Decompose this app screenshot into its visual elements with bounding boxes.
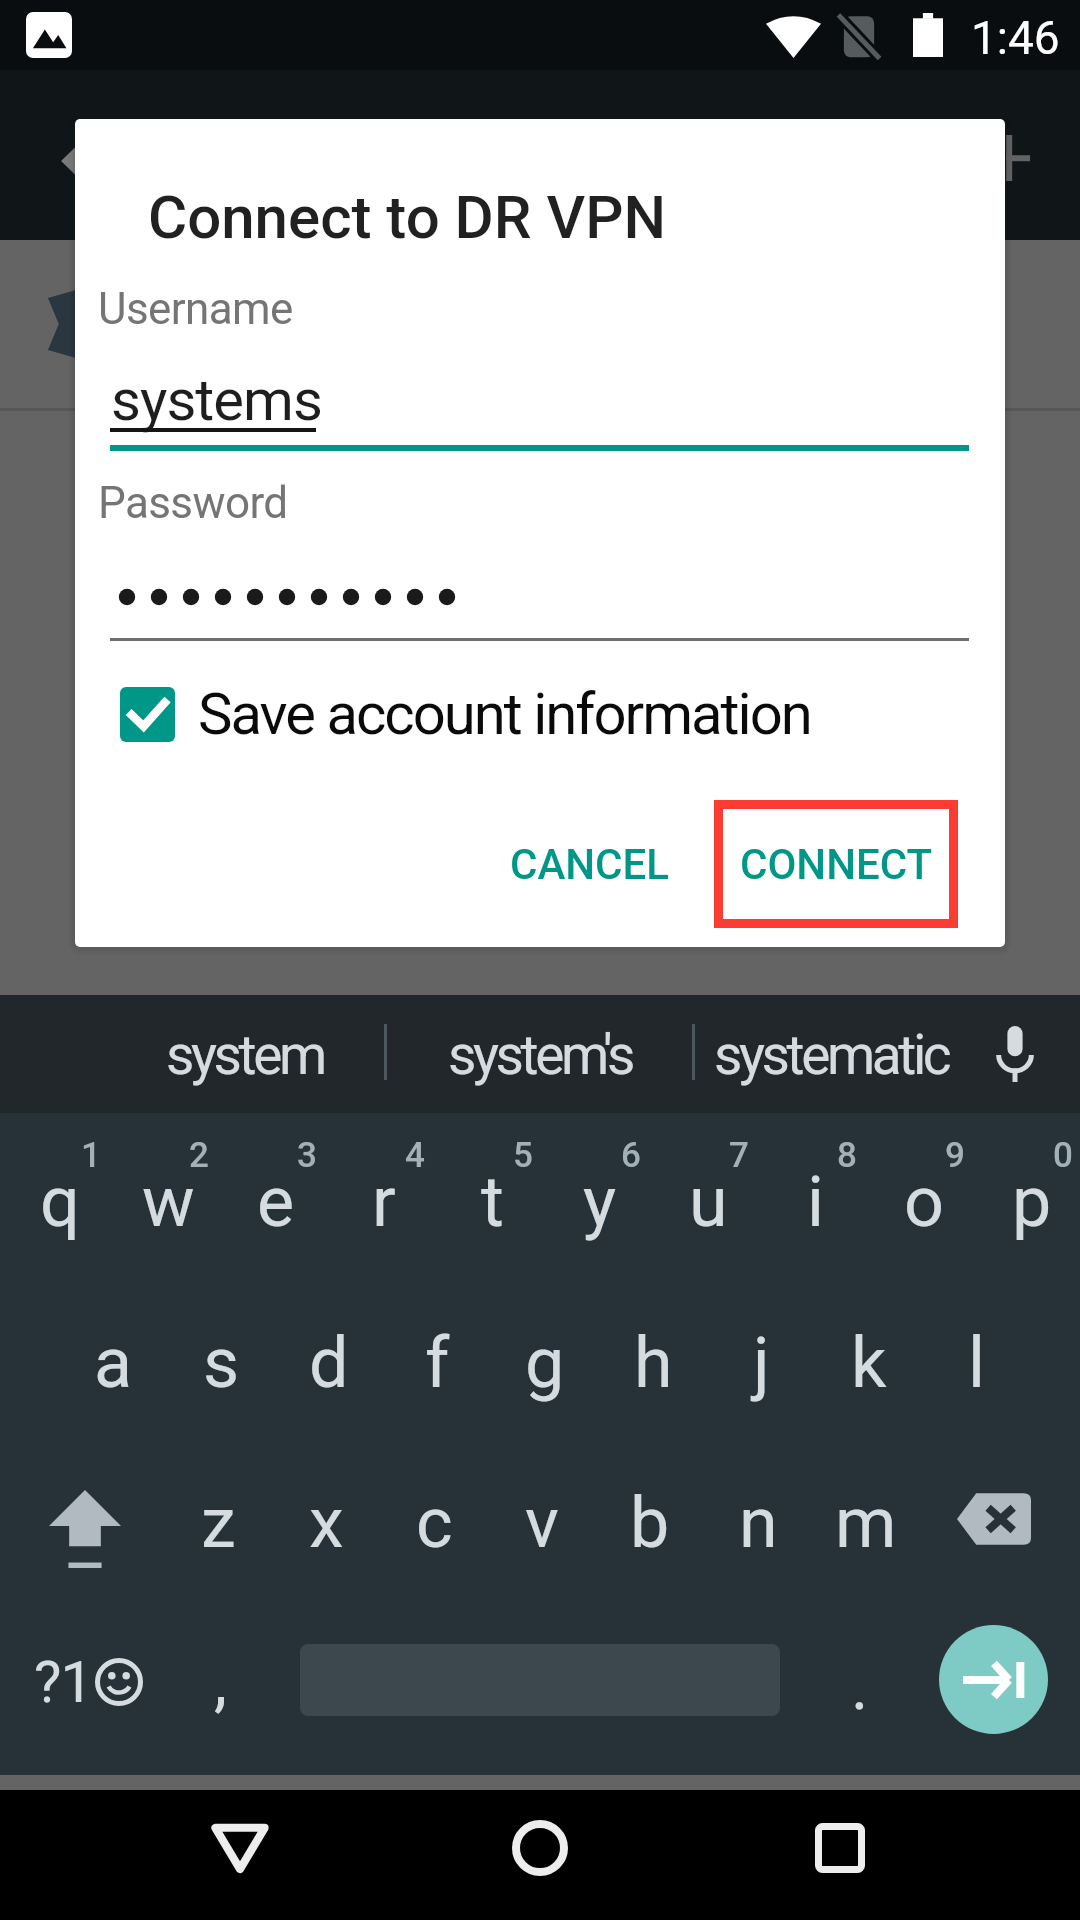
button[interactable]: Navigate up [20,110,130,220]
staticText: 2 [189,1135,209,1176]
button[interactable]: 0 [978,1113,1080,1273]
staticText: x [309,1482,344,1564]
button[interactable]: 1 [6,1113,114,1273]
staticText: a [94,1322,133,1404]
button[interactable]: Back [180,1790,300,1920]
button[interactable]: n [704,1433,812,1593]
staticText: v [525,1482,559,1564]
button[interactable]: 8 [762,1113,870,1273]
button[interactable]: f [383,1273,491,1433]
staticText: 7 [729,1135,749,1176]
staticText: Password [98,477,288,529]
staticText: system's [448,1023,633,1087]
button[interactable]: CONNECT [714,800,958,928]
button[interactable]: g [491,1273,599,1433]
staticText: n [739,1482,778,1564]
staticText: l [968,1322,986,1404]
button[interactable]: systematic [702,995,960,1113]
button[interactable]: system's [388,995,693,1113]
button[interactable]: Save account information [120,674,811,754]
button[interactable]: l [923,1273,1031,1433]
button[interactable]: Backspace [920,1433,1080,1593]
button[interactable]: 6 [546,1113,654,1273]
staticText: b [630,1482,670,1564]
button[interactable]: , [168,1593,280,1775]
staticText: w [142,1161,195,1243]
staticText: systematic [714,1023,949,1087]
staticText: y [583,1161,617,1243]
staticText: z [201,1482,236,1564]
staticText: p [1012,1161,1052,1243]
button[interactable]: b [596,1433,704,1593]
staticText: 8 [837,1135,857,1176]
button[interactable]: CANCEL [455,813,723,915]
staticText: 5 [513,1135,533,1176]
staticText: 9 [945,1135,965,1176]
staticText: 4 [405,1135,425,1176]
staticText: ?1 [34,1648,93,1716]
staticText: Connect to DR VPN [148,182,667,252]
button[interactable]: x [272,1433,380,1593]
staticText: 6 [621,1135,641,1176]
button[interactable]: 3 [222,1113,330,1273]
button[interactable]: 5 [438,1113,546,1273]
button[interactable]: k [815,1273,923,1433]
staticText: CANCEL [510,840,669,889]
staticText: k [851,1322,887,1404]
staticText: o [904,1161,944,1243]
button[interactable]: . [800,1593,918,1775]
staticText: s [203,1322,240,1404]
button[interactable]: Symbols and emoji [0,1593,172,1775]
button[interactable]: Photos [26,12,72,58]
staticText: f [425,1322,450,1404]
staticText: 1:46 [971,11,1060,65]
button[interactable]: 9 [870,1113,978,1273]
button[interactable]: j [707,1273,815,1433]
staticText: 1 [81,1135,101,1176]
button[interactable]: Home [480,1790,600,1920]
staticText: 0 [1053,1135,1073,1176]
staticText: CONNECT [740,840,933,889]
button[interactable]: c [380,1433,488,1593]
button[interactable]: 7 [654,1113,762,1273]
button[interactable]: system [132,995,358,1113]
staticText: c [416,1482,453,1564]
staticText: Username [98,283,293,335]
button[interactable]: d [275,1273,383,1433]
button[interactable]: z [164,1433,272,1593]
staticText: u [689,1161,728,1243]
staticText: systems [111,366,322,434]
staticText: j [753,1322,770,1404]
button[interactable]: Recents [780,1790,900,1920]
staticText: t [481,1161,504,1243]
button[interactable]: a [59,1273,167,1433]
button[interactable]: 2 [114,1113,222,1273]
button[interactable]: Voice input [975,995,1055,1113]
staticText: Save account information [198,680,811,748]
button[interactable]: 4 [330,1113,438,1273]
staticText: q [40,1161,80,1243]
staticText: . [851,1648,869,1725]
button[interactable]: Add [950,110,1060,220]
button[interactable]: s [167,1273,275,1433]
button[interactable]: v [488,1433,596,1593]
staticText: h [634,1322,673,1404]
staticText: i [807,1161,825,1243]
staticText: e [257,1161,295,1243]
button[interactable]: Shift [0,1433,162,1593]
staticText: 3 [297,1135,317,1176]
staticText: d [309,1322,349,1404]
button[interactable]: m [812,1433,920,1593]
staticText: r [372,1161,396,1243]
button[interactable]: Enter [939,1625,1048,1734]
staticText: g [525,1322,565,1404]
staticText: , [214,1643,227,1720]
staticText: system [166,1023,324,1087]
staticText: m [835,1482,897,1564]
button[interactable]: h [599,1273,707,1433]
